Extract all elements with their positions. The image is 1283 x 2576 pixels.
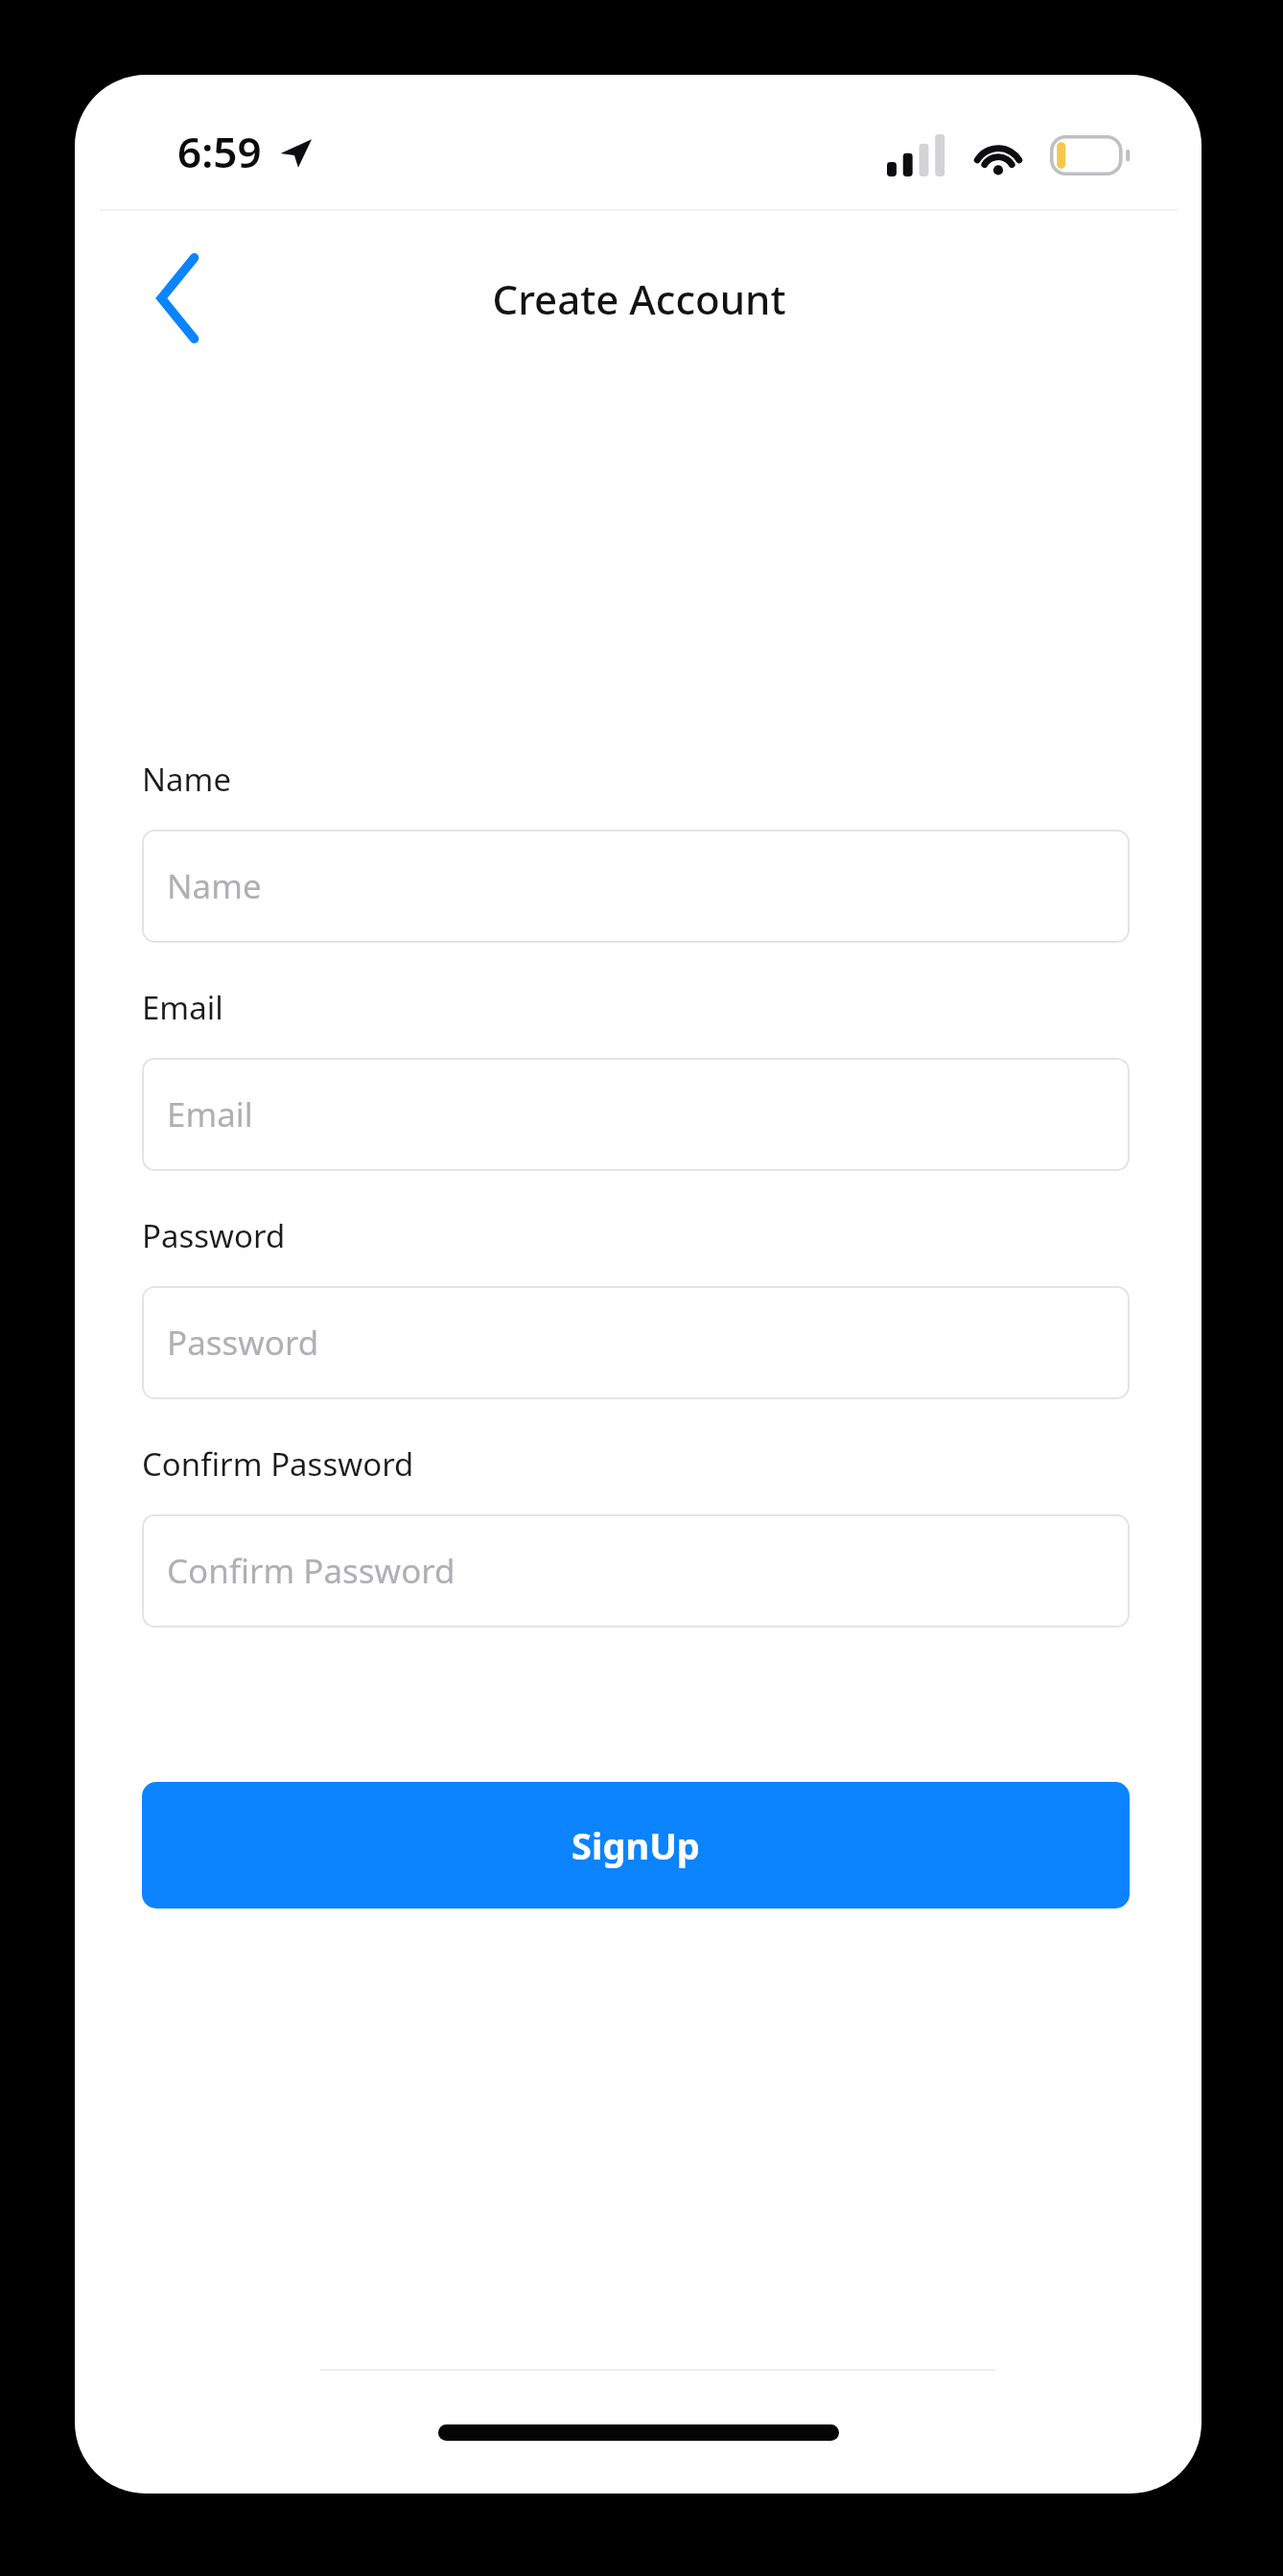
staticText: Confirm Password [142, 1442, 414, 1486]
staticText: 6:59 [177, 123, 262, 180]
button[interactable]: Back [127, 242, 232, 355]
staticText: Name [167, 863, 262, 909]
button[interactable]: Confirm Password [142, 1514, 1130, 1628]
staticText: Name [142, 758, 232, 801]
button[interactable]: Name [142, 830, 1130, 943]
button[interactable]: Email [142, 1058, 1130, 1171]
staticText: SignUp [572, 1820, 700, 1870]
staticText: Create Account [492, 271, 786, 326]
staticText: Confirm Password [167, 1548, 455, 1594]
staticText: Email [167, 1091, 253, 1137]
button[interactable]: Password [142, 1286, 1130, 1399]
staticText: Email [142, 986, 223, 1029]
staticText: Password [142, 1214, 286, 1257]
button[interactable]: SignUp [142, 1782, 1130, 1909]
staticText: Password [167, 1320, 319, 1366]
